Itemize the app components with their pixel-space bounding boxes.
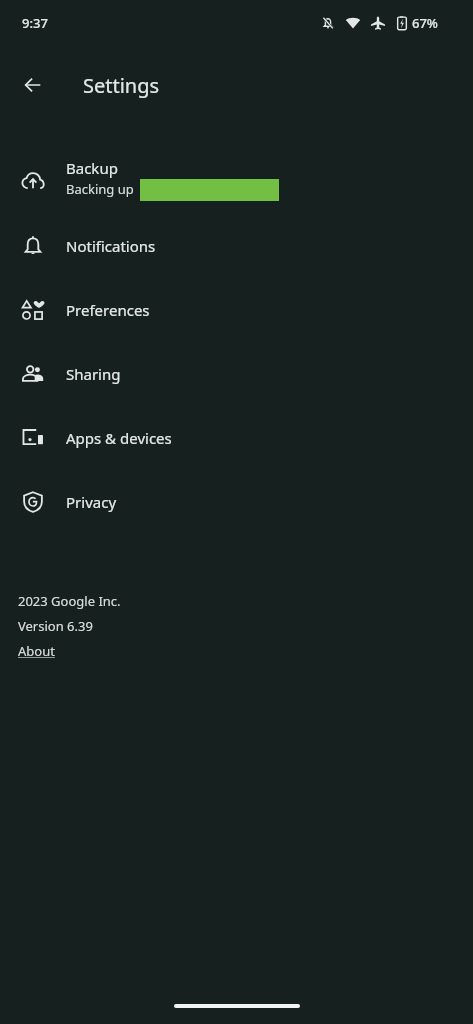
button[interactable]: Privacy	[0, 470, 473, 534]
button[interactable]: Notifications	[0, 214, 473, 278]
button[interactable]: Apps & devices	[0, 406, 473, 470]
button[interactable]: Back	[12, 64, 54, 106]
staticText: Sharing	[66, 364, 121, 384]
staticText: Apps & devices	[66, 428, 172, 448]
staticText: Settings	[83, 72, 160, 99]
staticText: Backup	[66, 158, 118, 178]
staticText: Version 6.39	[18, 617, 93, 635]
button[interactable]: Backup	[0, 150, 473, 214]
staticText: Notifications	[66, 236, 156, 256]
button[interactable]: Sharing	[0, 342, 473, 406]
staticText: Preferences	[66, 300, 150, 320]
staticText: Privacy	[66, 492, 117, 512]
button[interactable]: Preferences	[0, 278, 473, 342]
staticText: About	[18, 642, 55, 660]
staticText: Backing up	[66, 180, 134, 198]
staticText: 9:37	[22, 14, 48, 32]
button[interactable]: About	[18, 642, 55, 660]
staticText: 67%	[412, 14, 438, 32]
staticText: 2023 Google Inc.	[18, 592, 121, 610]
